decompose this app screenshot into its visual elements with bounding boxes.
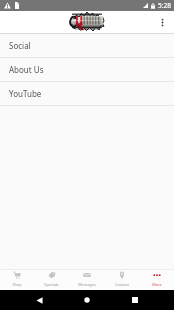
button[interactable]: Back	[30, 291, 48, 309]
button[interactable]: Specials	[34, 270, 69, 290]
button[interactable]: Contact	[104, 270, 139, 290]
staticText: More	[152, 282, 162, 287]
button[interactable]: Recent apps	[126, 291, 144, 309]
button[interactable]: More options	[151, 11, 174, 34]
staticText: Contact	[115, 282, 129, 287]
staticText: Social	[9, 40, 31, 51]
staticText: 5:28	[158, 1, 172, 10]
staticText: Specials	[44, 282, 59, 287]
button[interactable]: Home	[78, 291, 96, 309]
button[interactable]: YouTube	[0, 82, 174, 105]
staticText: About Us	[9, 64, 44, 75]
staticText: YouTube	[9, 88, 42, 99]
button[interactable]: Messages	[69, 270, 104, 290]
button[interactable]: Social	[0, 34, 174, 57]
button[interactable]: Shop	[0, 270, 34, 290]
button[interactable]: About Us	[0, 58, 174, 81]
button[interactable]: More	[139, 270, 174, 290]
staticText: Messages	[78, 282, 96, 287]
staticText: Shop	[12, 282, 22, 287]
